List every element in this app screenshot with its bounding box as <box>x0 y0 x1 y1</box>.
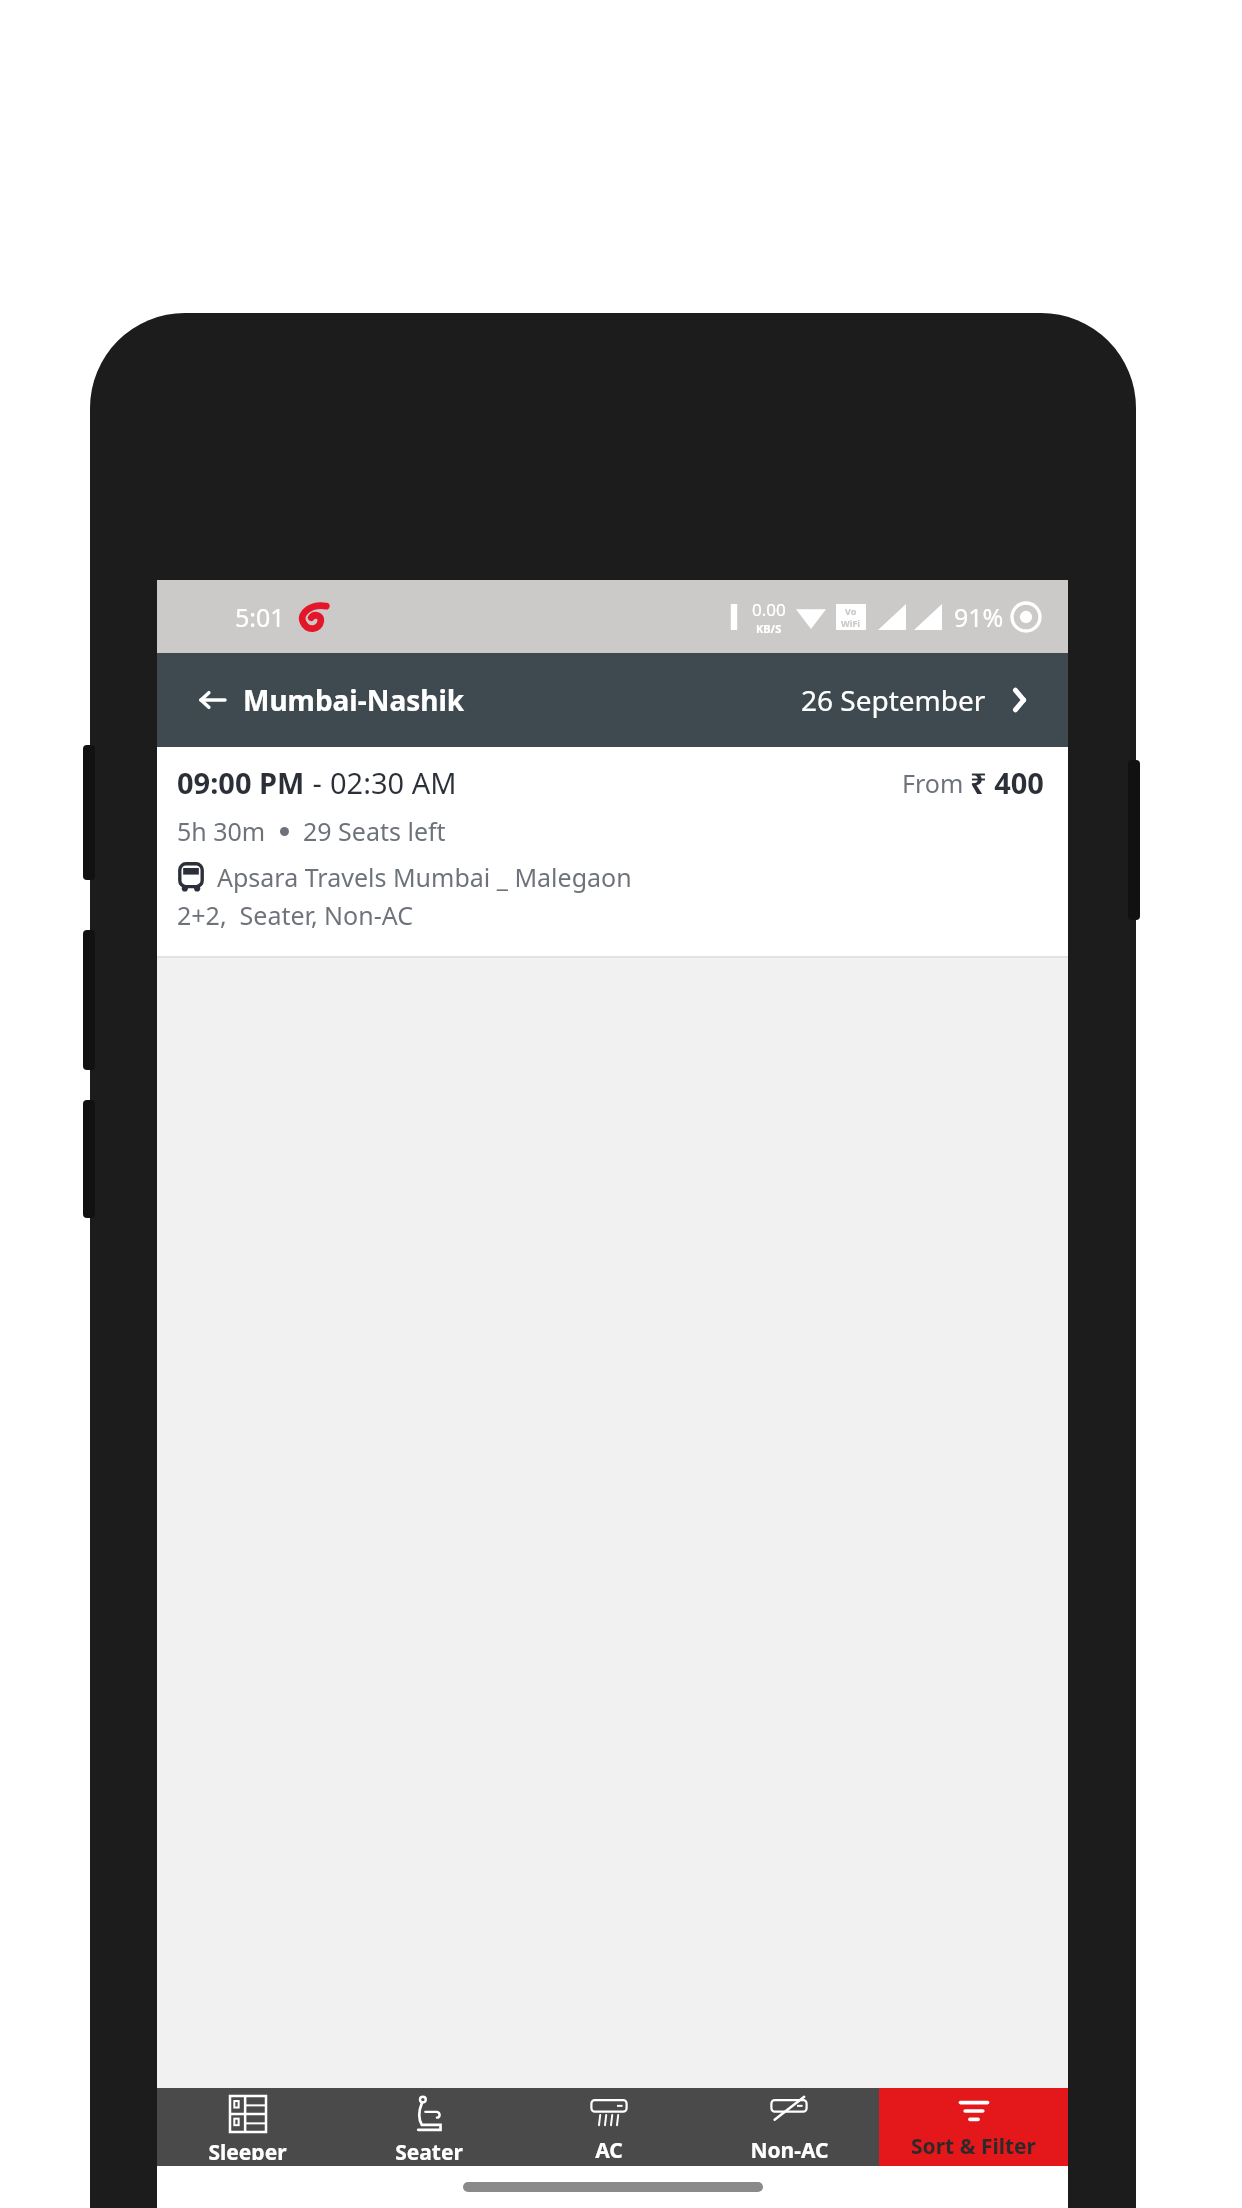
staticText: 2+2, Seater, Non-AC <box>177 898 414 932</box>
button[interactable]: Back <box>193 673 469 727</box>
button[interactable]: 26 September <box>795 671 1040 729</box>
staticText: Non-AC <box>750 2136 829 2160</box>
staticText: KB/S <box>756 621 782 636</box>
staticText: 26 September <box>801 681 986 719</box>
staticText: WiFi <box>841 617 861 629</box>
button[interactable]: Non-AC <box>699 2088 879 2166</box>
other: Back <box>197 685 227 715</box>
staticText: From <box>902 766 970 800</box>
staticText: Mumbai-Nashik <box>243 681 465 719</box>
staticText: Sleeper <box>208 2138 287 2160</box>
button[interactable]: Sort & Filter <box>879 2088 1068 2166</box>
staticText: Apsara Travels Mumbai _ Malegaon <box>217 860 632 894</box>
staticText: - <box>305 763 330 802</box>
staticText: 5:01 <box>235 600 285 634</box>
staticText: AC <box>595 2136 623 2160</box>
staticText: Vo <box>845 605 857 617</box>
staticText: ₹ 400 <box>970 763 1044 802</box>
staticText: 09:00 PM <box>177 763 305 802</box>
staticText: Sort & Filter <box>911 2132 1036 2160</box>
button[interactable]: AC <box>519 2088 699 2166</box>
button[interactable]: Sleeper <box>157 2088 338 2166</box>
staticText: 91% <box>954 600 1004 634</box>
staticText: 29 Seats left <box>303 814 446 848</box>
staticText: 5h 30m <box>177 814 266 848</box>
staticText: 0.00 <box>752 598 786 621</box>
staticText: Seater <box>395 2138 463 2160</box>
button[interactable]: 09:00 PM <box>157 747 1068 956</box>
other: Next day <box>1004 685 1034 715</box>
button[interactable]: Seater <box>338 2088 519 2166</box>
staticText: 02:30 AM <box>330 763 457 802</box>
